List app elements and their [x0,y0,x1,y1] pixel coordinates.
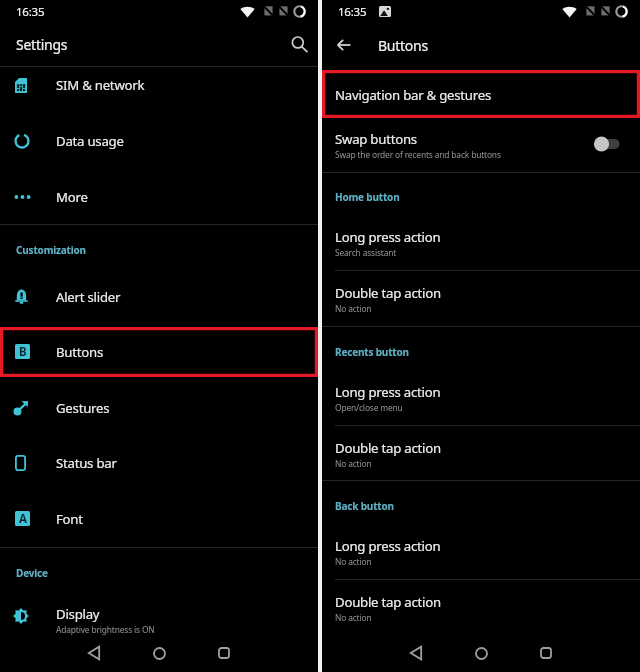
staticText: Home button [335,190,400,204]
button[interactable]: Display [0,592,318,640]
button[interactable]: Double tap action [322,271,640,326]
staticText: 16:35 [338,4,367,20]
staticText: Display [56,605,100,623]
staticText: Back button [335,499,394,513]
staticText: SIM & network [56,76,145,94]
staticText: Double tap action [335,593,441,611]
button[interactable]: Home [463,635,499,671]
staticText: Gestures [56,399,110,417]
button[interactable]: Status bar [0,436,318,490]
staticText: Customization [16,243,86,257]
staticText: A [19,511,27,526]
staticText: Long press action [335,383,441,401]
button[interactable]: Back [398,635,434,671]
button[interactable]: Navigation bar & gestures [322,70,640,118]
staticText: Settings [16,35,68,54]
button[interactable]: SIM & network [0,67,318,114]
staticText: Font [56,510,83,528]
staticText: No action [335,612,372,623]
button[interactable]: Navigate up [327,28,361,62]
staticText: Swap buttons [335,130,417,148]
staticText: Open/close menu [335,402,403,413]
button[interactable]: Data usage [0,114,318,169]
staticText: Navigation bar & gestures [335,86,491,104]
button[interactable]: Long press action [322,215,640,270]
button[interactable]: More [0,169,318,224]
staticText: Search assistant [335,247,397,258]
staticText: Long press action [335,228,441,246]
button[interactable]: Long press action [322,370,640,425]
staticText: No action [335,556,372,567]
staticText: Alert slider [56,288,121,306]
button[interactable]: A [0,492,318,546]
staticText: B [19,344,27,359]
button[interactable]: Search [282,27,316,61]
button[interactable]: Home [141,635,177,671]
staticText: Double tap action [335,284,441,302]
staticText: Buttons [56,343,104,361]
button[interactable]: B [0,327,318,377]
button[interactable]: Double tap action [322,426,640,480]
button[interactable]: Long press action [322,524,640,579]
button[interactable]: Swap buttons toggle, off [588,122,626,166]
staticText: More [56,188,88,206]
staticText: Double tap action [335,439,441,457]
staticText: Device [16,566,48,580]
staticText: Swap the order of recents and back butto… [335,149,501,160]
staticText: Data usage [56,132,124,150]
staticText: No action [335,303,372,314]
button[interactable]: Recents [206,635,242,671]
staticText: Long press action [335,537,441,555]
staticText: No action [335,458,372,469]
staticText: Recents button [335,345,409,359]
button[interactable]: Back [76,635,112,671]
button[interactable]: Gestures [0,381,318,435]
button[interactable]: Alert slider [0,270,318,324]
staticText: Buttons [378,36,428,55]
staticText: Adaptive brightness is ON [56,624,155,635]
button[interactable]: Swap buttons [322,118,640,172]
staticText: Status bar [56,454,117,472]
staticText: 16:35 [16,4,45,20]
button[interactable]: Double tap action [322,580,640,634]
button[interactable]: Recents [528,635,564,671]
